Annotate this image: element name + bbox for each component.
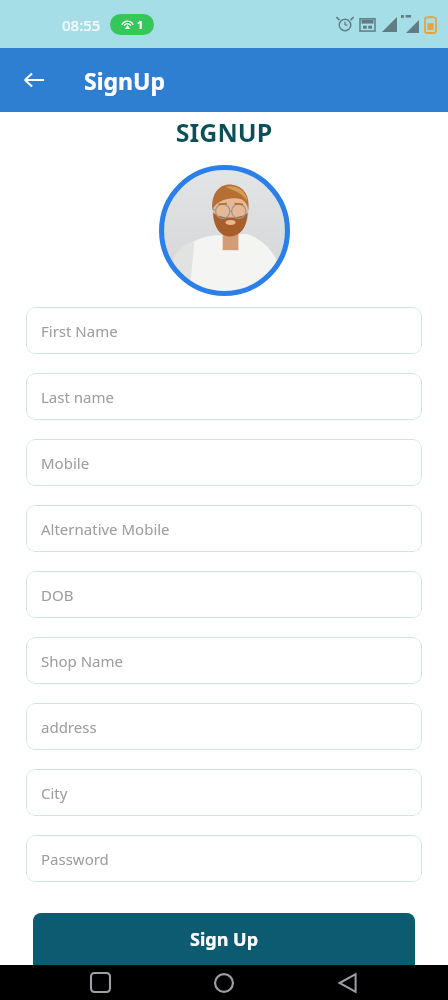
button[interactable]: Back — [324, 965, 372, 1000]
staticText: First Name — [41, 321, 118, 341]
button[interactable]: City — [26, 769, 422, 816]
button[interactable]: Sign Up — [33, 913, 415, 965]
staticText: 1 — [137, 17, 144, 32]
staticText: Password — [41, 849, 109, 869]
button[interactable]: Home — [200, 965, 248, 1000]
button[interactable]: DOB — [26, 571, 422, 618]
button[interactable]: Mobile — [26, 439, 422, 486]
staticText: Shop Name — [41, 651, 124, 671]
button[interactable]: First Name — [26, 307, 422, 354]
button[interactable]: Alternative Mobile — [26, 505, 422, 552]
staticText: Alternative Mobile — [41, 519, 170, 539]
button[interactable]: address — [26, 703, 422, 750]
staticText: address — [41, 717, 97, 737]
staticText: Last name — [41, 387, 114, 407]
button[interactable]: Profile photo — [159, 165, 290, 296]
staticText: 08:55 — [62, 15, 101, 35]
staticText: SignUp — [84, 65, 165, 96]
button[interactable]: Shop Name — [26, 637, 422, 684]
staticText: Mobile — [41, 453, 90, 473]
button[interactable]: Password — [26, 835, 422, 882]
button[interactable]: Back — [12, 58, 56, 102]
staticText: SIGNUP — [0, 115, 448, 149]
staticText: City — [41, 783, 68, 803]
staticText: Sign Up — [190, 927, 259, 952]
button[interactable]: Recent apps — [76, 965, 124, 1000]
staticText: DOB — [41, 585, 74, 605]
button[interactable]: Last name — [26, 373, 422, 420]
